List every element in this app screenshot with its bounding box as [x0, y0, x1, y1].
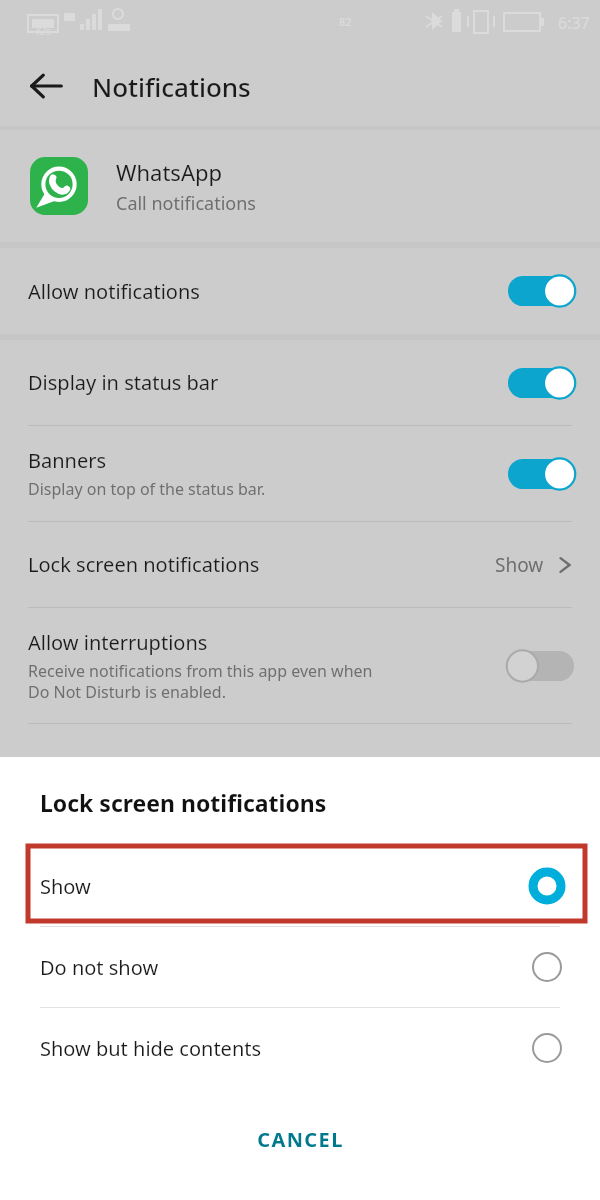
staticText: Allow interruptions	[28, 629, 208, 656]
staticText: Display in status bar	[28, 369, 219, 396]
staticText: 6:37	[558, 12, 590, 34]
staticText: WhatsApp	[116, 157, 222, 187]
staticText: Call notifications	[116, 191, 256, 216]
staticText: Allow notifications	[28, 278, 200, 305]
button[interactable]: Allow notifications	[0, 248, 600, 334]
button[interactable]: CANCEL	[0, 1102, 600, 1176]
button[interactable]: Back	[22, 62, 70, 110]
button[interactable]: Display in status bar	[0, 340, 600, 426]
button[interactable]: Show but hide contents	[0, 1008, 600, 1088]
staticText: Show	[495, 552, 544, 578]
staticText: K/s	[36, 24, 51, 38]
button[interactable]: Banners	[0, 426, 600, 522]
staticText: Lock screen notifications	[28, 551, 260, 578]
staticText: Show	[40, 873, 532, 900]
staticText: Display on top of the status bar.	[28, 478, 266, 500]
button[interactable]: Show	[0, 846, 600, 927]
staticText: Lock screen notifications	[40, 787, 327, 818]
staticText: Do not show	[40, 954, 532, 981]
staticText: Notifications	[92, 69, 251, 104]
staticText: Receive notifications from this app even…	[28, 660, 373, 703]
staticText: CANCEL	[257, 1126, 344, 1153]
staticText: 82	[339, 14, 352, 29]
button[interactable]: Lock screen notifications	[0, 522, 600, 608]
button[interactable]: WhatsApp	[0, 130, 600, 242]
button[interactable]: Allow interruptions	[0, 608, 600, 724]
staticText: Show but hide contents	[40, 1035, 532, 1062]
button[interactable]: Do not show	[0, 927, 600, 1008]
staticText: Banners	[28, 447, 107, 474]
